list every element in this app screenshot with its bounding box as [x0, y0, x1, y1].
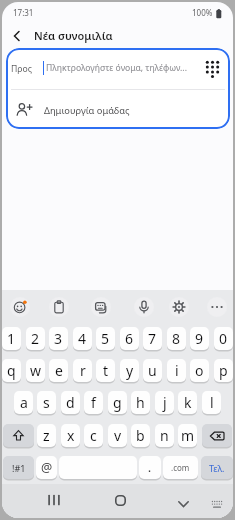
staticText: x — [67, 426, 75, 445]
button[interactable]: q — [2, 359, 21, 382]
staticText: 17:31 — [13, 7, 34, 18]
staticText: b — [136, 426, 145, 445]
button[interactable]: 7 — [143, 327, 162, 350]
staticText: 1 — [7, 329, 16, 348]
button[interactable]: f — [84, 391, 103, 414]
staticText: r — [80, 361, 86, 380]
button[interactable]: v — [108, 424, 127, 447]
button[interactable] — [3, 424, 34, 447]
button[interactable]: z — [37, 424, 56, 447]
staticText: z — [43, 426, 50, 445]
staticText: t — [103, 361, 109, 380]
staticText: 0 — [219, 329, 228, 348]
button[interactable] — [206, 494, 228, 514]
staticText: j — [163, 393, 167, 412]
staticText: 6 — [125, 329, 134, 348]
button[interactable]: g — [108, 391, 127, 414]
staticText: n — [160, 426, 169, 445]
button[interactable]: x — [61, 424, 80, 447]
staticText: k — [184, 393, 192, 412]
button[interactable] — [108, 488, 132, 512]
button[interactable]: 3 — [49, 327, 68, 350]
button[interactable]: 6 — [120, 327, 139, 350]
button[interactable] — [59, 456, 137, 479]
staticText: d — [66, 393, 75, 412]
staticText: 8 — [172, 329, 181, 348]
staticText: 9 — [195, 329, 204, 348]
staticText: Προς — [11, 63, 33, 75]
staticText: 4 — [78, 329, 87, 348]
staticText: .com — [171, 462, 190, 473]
staticText: !#1 — [12, 462, 26, 474]
staticText: w — [30, 361, 42, 380]
button[interactable]: n — [155, 424, 174, 447]
button[interactable]: s — [37, 391, 56, 414]
button[interactable]: r — [73, 359, 92, 382]
button[interactable]: b — [131, 424, 150, 447]
button[interactable]: y — [120, 359, 139, 382]
button[interactable] — [207, 297, 227, 317]
button[interactable]: m — [178, 424, 197, 447]
button[interactable]: 1 — [2, 327, 21, 350]
button[interactable]: u — [143, 359, 162, 382]
button[interactable]: Προς — [6, 48, 230, 89]
staticText: 5 — [101, 329, 110, 348]
staticText: 3 — [54, 329, 63, 348]
staticText: m — [181, 426, 195, 445]
button[interactable]: e — [49, 359, 68, 382]
staticText: s — [43, 393, 50, 412]
button[interactable]: 4 — [73, 327, 92, 350]
button[interactable] — [6, 26, 28, 46]
staticText: p — [219, 361, 228, 380]
button[interactable]: d — [61, 391, 80, 414]
button[interactable]: Τελ. — [201, 456, 233, 479]
button[interactable]: p — [214, 359, 233, 382]
button[interactable]: 2 — [26, 327, 45, 350]
button[interactable]: Δημιουργία ομάδας — [6, 90, 230, 129]
button[interactable]: l — [202, 391, 221, 414]
button[interactable]: !#1 — [3, 456, 34, 479]
staticText: e — [55, 361, 63, 380]
staticText: . — [148, 460, 152, 475]
button[interactable]: 8 — [167, 327, 186, 350]
button[interactable] — [91, 297, 111, 317]
button[interactable]: h — [131, 391, 150, 414]
button[interactable]: . — [139, 456, 161, 479]
button[interactable]: .com — [163, 456, 198, 479]
staticText: Πληκτρολογήστε όνομα, τηλέφων... — [46, 62, 198, 75]
button[interactable]: 0 — [214, 327, 233, 350]
button[interactable]: a — [14, 391, 33, 414]
button[interactable]: 9 — [190, 327, 209, 350]
button[interactable] — [134, 297, 154, 317]
button[interactable]: j — [155, 391, 174, 414]
staticText: 7 — [148, 329, 157, 348]
staticText: f — [91, 393, 96, 412]
staticText: g — [113, 393, 122, 412]
button[interactable] — [169, 297, 189, 317]
staticText: @ — [41, 459, 53, 476]
staticText: 100% — [192, 7, 213, 18]
button[interactable]: c — [84, 424, 103, 447]
button[interactable] — [202, 424, 232, 447]
button[interactable]: o — [190, 359, 209, 382]
button[interactable] — [171, 492, 195, 516]
staticText: q — [7, 361, 16, 380]
staticText: l — [210, 393, 214, 412]
staticText: h — [136, 393, 145, 412]
button[interactable] — [10, 297, 30, 317]
staticText: c — [90, 426, 97, 445]
staticText: 2 — [31, 329, 40, 348]
button[interactable] — [49, 297, 69, 317]
button[interactable]: i — [167, 359, 186, 382]
staticText: o — [195, 361, 204, 380]
button[interactable]: k — [178, 391, 197, 414]
staticText: y — [126, 361, 134, 380]
button[interactable]: 5 — [96, 327, 115, 350]
staticText: i — [175, 361, 179, 380]
button[interactable] — [42, 488, 66, 512]
button[interactable]: w — [26, 359, 45, 382]
button[interactable]: @ — [36, 456, 57, 479]
button[interactable]: t — [96, 359, 115, 382]
staticText: a — [20, 393, 28, 412]
staticText: Νέα συνομιλία — [34, 28, 113, 43]
